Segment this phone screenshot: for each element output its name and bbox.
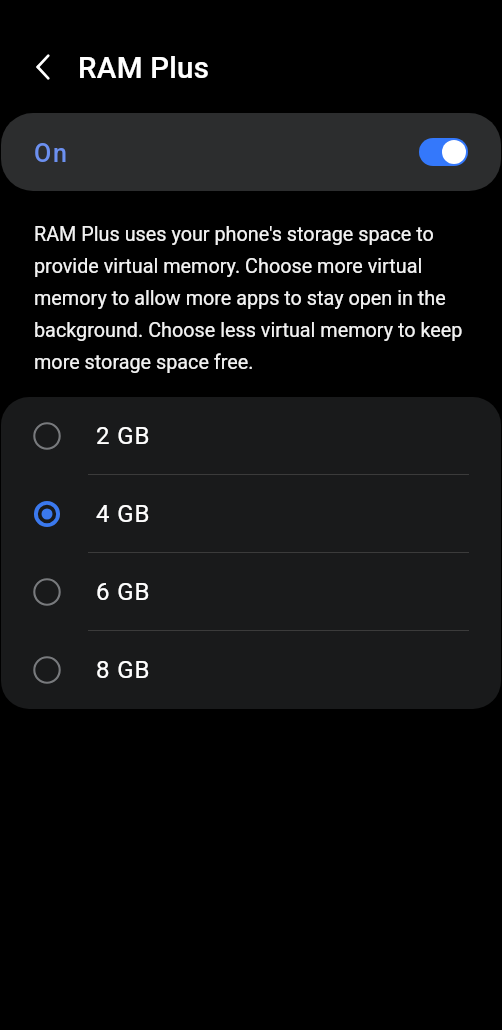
staticText: 4 GB xyxy=(96,500,151,528)
staticText: 2 GB xyxy=(96,422,151,450)
staticText: 8 GB xyxy=(96,656,151,684)
button[interactable]: On xyxy=(1,113,501,191)
button[interactable]: 4 GB xyxy=(1,475,501,553)
button[interactable]: Navigate up xyxy=(25,48,63,86)
staticText: 6 GB xyxy=(96,578,151,606)
staticText: RAM Plus xyxy=(78,51,210,86)
button[interactable]: 8 GB xyxy=(1,631,501,709)
button[interactable]: 6 GB xyxy=(1,553,501,631)
button[interactable]: 2 GB xyxy=(1,397,501,475)
staticText: On xyxy=(34,139,69,168)
button[interactable]: Turn RAM Plus on or off xyxy=(419,138,468,166)
staticText: RAM Plus uses your phone's storage space… xyxy=(34,216,472,376)
